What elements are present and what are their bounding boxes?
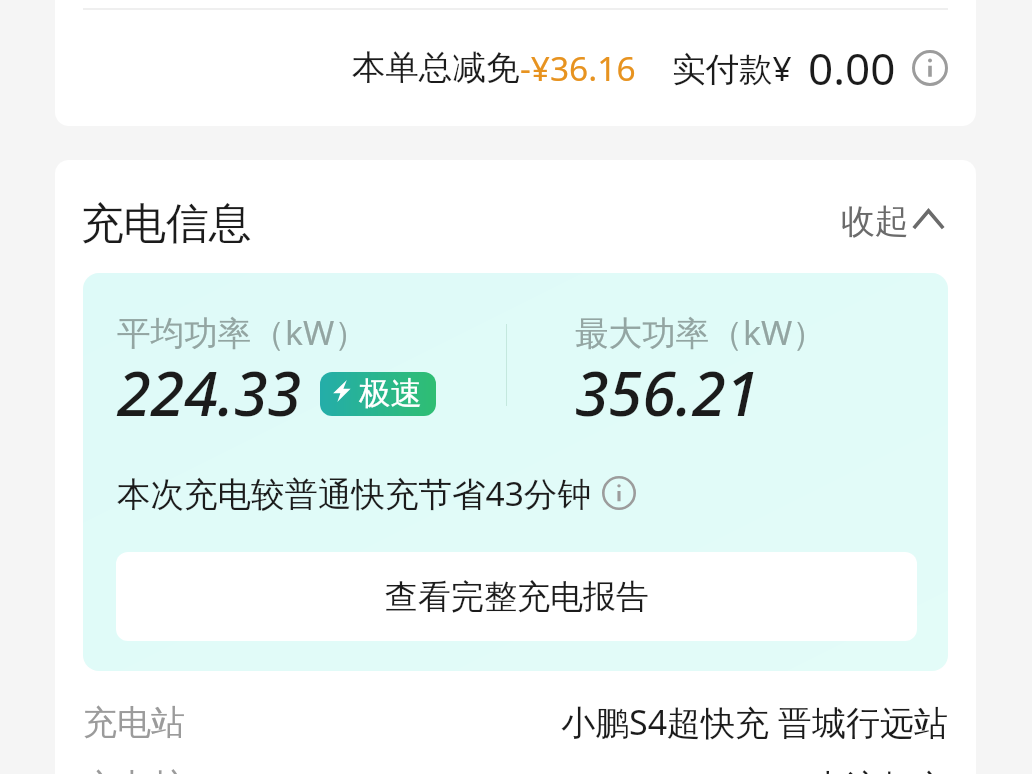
staticText: 平均功率（kW） (117, 309, 368, 355)
staticText: 本次充电较普通快充节省43分钟 (117, 470, 591, 516)
button[interactable]: How this is calculated (602, 476, 636, 510)
staticText: 小鹏S4超快充 晋城行远站 (561, 699, 948, 745)
staticText: A01 直流超充 (742, 763, 948, 774)
staticText: 实付款¥ (672, 45, 792, 91)
button[interactable]: 查看完整充电报告 (116, 552, 917, 641)
staticText: 充电桩 (83, 765, 185, 774)
button[interactable]: 极速 (320, 372, 436, 416)
staticText: 收起 (841, 200, 909, 243)
button[interactable]: 充电桩 (55, 754, 976, 774)
staticText: 充电信息 (81, 197, 252, 251)
button[interactable]: 收起 (841, 200, 976, 243)
staticText: 0.00 (808, 38, 896, 98)
button[interactable]: 充电站 (55, 690, 976, 754)
button[interactable]: Payment details (912, 50, 948, 86)
staticText: 极速 (359, 374, 422, 414)
staticText: 充电站 (83, 701, 185, 744)
staticText: 356.21 (575, 351, 760, 434)
staticText: 224.33 (117, 351, 302, 434)
staticText: 本单总减免 (352, 47, 520, 89)
staticText: 查看完整充电报告 (385, 576, 649, 618)
staticText: 最大功率（kW） (575, 309, 826, 355)
staticText: -¥36.16 (520, 45, 636, 91)
